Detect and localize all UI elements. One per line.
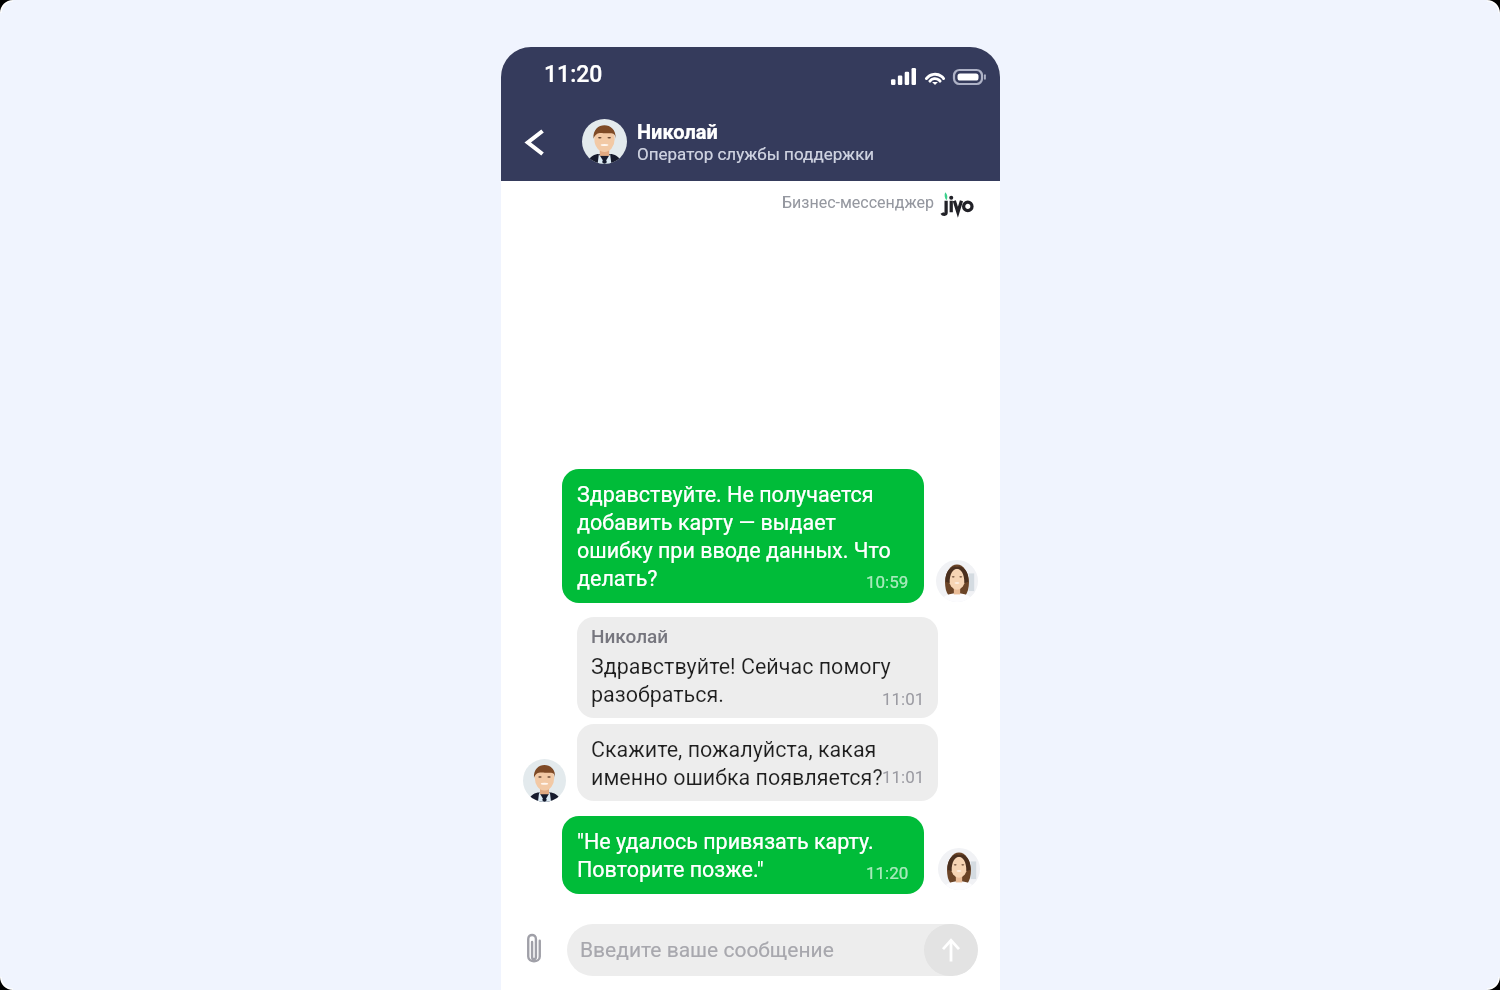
staticText: Здравствуйте! Сейчас помогу разобраться.	[591, 654, 891, 707]
button[interactable]: Здравствуйте. Не получается добавить кар…	[562, 469, 924, 603]
staticText: 11:01	[882, 767, 925, 787]
button[interactable]: Attach file	[511, 919, 557, 977]
staticText: 10:59	[866, 572, 909, 592]
button[interactable]: Николай	[577, 617, 938, 718]
staticText: 11:01	[882, 689, 925, 709]
staticText: Николай	[637, 120, 718, 143]
staticText: 11:20	[544, 61, 603, 88]
button[interactable]: Send	[924, 924, 978, 976]
staticText: "Не удалось привязать карту. Повторите п…	[577, 829, 874, 882]
button[interactable]: Back	[511, 118, 559, 166]
button[interactable]: Скажите, пожалуйста, какая именно ошибка…	[577, 724, 938, 801]
staticText: Николай	[591, 625, 669, 647]
button[interactable]: Введите ваше сообщение	[567, 924, 978, 976]
staticText: Бизнес-мессенджер	[782, 193, 934, 212]
button[interactable]: "Не удалось привязать карту. Повторите п…	[562, 816, 924, 894]
staticText: Оператор службы поддержки	[637, 144, 875, 164]
staticText: 11:20	[866, 863, 909, 883]
staticText: Введите ваше сообщение	[580, 938, 834, 963]
staticText: Скажите, пожалуйста, какая именно ошибка…	[591, 737, 883, 790]
staticText: Здравствуйте. Не получается добавить кар…	[577, 482, 891, 591]
